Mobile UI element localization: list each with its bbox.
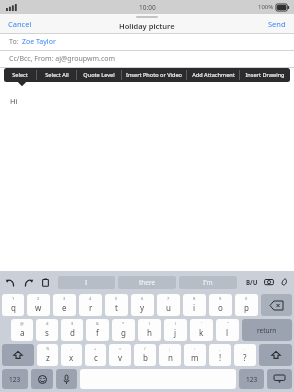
staticText: ( [149,321,151,326]
staticText: return [257,326,277,335]
button[interactable]: 7 [157,294,180,316]
button[interactable]: Undo [5,277,16,288]
staticText: p [244,302,249,313]
button[interactable]: 4 [79,294,102,316]
button[interactable]: Attach [279,277,289,287]
button[interactable]: . [234,344,256,366]
staticText: 0 [245,296,248,301]
button[interactable]: @ [11,319,33,341]
button[interactable]: 8 [183,294,206,316]
button[interactable]: " [216,319,239,341]
staticText: Send [268,19,286,29]
staticText: ! [219,352,222,363]
button[interactable]: ) [164,319,187,341]
button[interactable]: 0 [235,294,258,316]
button[interactable]: To: [0,34,294,50]
button[interactable]: $ [61,319,83,341]
button[interactable]: : [184,344,206,366]
staticText: = [119,346,122,351]
staticText: 1 [12,296,15,301]
button[interactable]: 2 [27,294,50,316]
button[interactable]: Select [4,68,36,82]
button[interactable]: , [209,344,231,366]
button[interactable]: return [242,319,292,341]
button[interactable]: * [112,319,135,341]
button[interactable]: B/U [245,277,259,287]
button[interactable]: Backspace [261,294,292,316]
button[interactable]: Redo [23,277,34,288]
button[interactable]: Insert Photo or Video [122,68,186,82]
button[interactable]: & [86,319,109,341]
button[interactable]: + [85,344,106,366]
staticText: w [35,302,42,313]
staticText: ? [243,352,247,363]
button[interactable]: Shift [2,344,34,366]
staticText: Insert Photo or Video [126,71,182,79]
button[interactable]: Shift [259,344,292,366]
button[interactable]: I [58,276,115,289]
staticText: % [46,346,50,351]
staticText: : [194,346,196,351]
button[interactable]: 6 [131,294,154,316]
staticText: o [218,302,223,313]
staticText: 9 [219,296,222,301]
staticText: b [143,352,148,363]
staticText: n [168,352,173,363]
button[interactable]: - [61,344,82,366]
staticText: g [121,327,126,338]
button[interactable]: = [109,344,131,366]
staticText: 10:00 [139,3,156,12]
staticText: 4 [89,296,92,301]
button[interactable]: 1 [2,294,24,316]
button[interactable]: Hide keyboard [267,369,292,389]
button[interactable]: 5 [105,294,128,316]
staticText: I [85,278,88,287]
button[interactable]: ' [190,319,213,341]
staticText: . [244,346,246,351]
button[interactable]: Emoji [31,369,53,389]
staticText: B/U [246,278,258,286]
button[interactable]: Select All [37,68,76,82]
button[interactable]: ; [159,344,181,366]
button[interactable]: # [36,319,58,341]
staticText: Select All [45,71,69,79]
button[interactable]: / [134,344,156,366]
button[interactable]: I'm [179,276,237,289]
button[interactable]: Quote Level [77,68,121,82]
staticText: " [227,321,229,326]
staticText: / [144,346,146,351]
button[interactable]: Cc/Bcc, From: aj@groupwm.com [0,51,294,67]
staticText: u [166,302,171,313]
staticText: 5 [115,296,118,301]
button[interactable]: Send [260,16,294,32]
staticText: 6 [141,296,144,301]
button[interactable]: Add Attachment [187,68,239,82]
staticText: Select [12,71,28,79]
button[interactable]: % [37,344,58,366]
button[interactable]: 123 [239,369,264,389]
staticText: v [118,352,123,363]
staticText: 123 [9,375,21,384]
button[interactable]: 3 [53,294,76,316]
button[interactable]: ( [138,319,161,341]
button[interactable]: Cancel [0,16,40,32]
staticText: j [174,327,177,338]
button[interactable]: Camera [264,277,274,287]
staticText: i [193,302,196,313]
staticText: m [191,352,199,363]
button[interactable]: Dictate [56,369,77,389]
staticText: there [139,278,156,287]
staticText: t [115,302,118,313]
staticText: Cc/Bcc, From: aj@groupwm.com [9,54,116,64]
staticText: ) [175,321,177,326]
staticText: k [199,327,204,338]
button[interactable]: Insert Drawing [240,68,290,82]
staticText: y [140,302,145,313]
button[interactable]: Paste [41,278,50,287]
button[interactable]: 123 [2,369,28,389]
staticText: c [94,352,98,363]
staticText: Insert Drawing [245,71,285,79]
button[interactable]: 9 [209,294,232,316]
button[interactable]: there [118,276,176,289]
